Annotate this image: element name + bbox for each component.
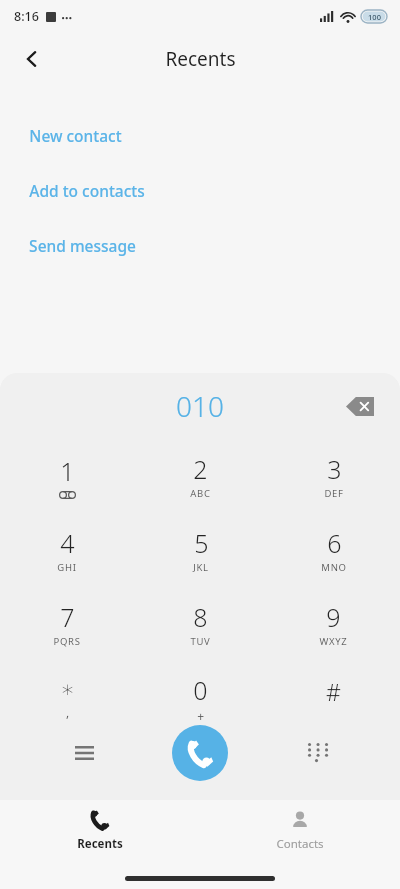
- staticText: 6: [327, 526, 342, 560]
- staticText: 5: [194, 526, 209, 560]
- staticText: PQRS: [53, 635, 81, 648]
- staticText: ∗: [60, 676, 75, 703]
- button[interactable]: Dialpad: [294, 731, 338, 775]
- staticText: 8:16: [14, 8, 39, 25]
- staticText: +: [197, 708, 205, 724]
- button[interactable]: Backspace: [338, 384, 382, 428]
- staticText: TUV: [190, 635, 211, 648]
- staticText: MNO: [321, 561, 347, 574]
- staticText: JKL: [193, 561, 209, 574]
- button[interactable]: 5: [134, 513, 267, 587]
- staticText: DEF: [324, 487, 344, 500]
- button[interactable]: More options: [62, 731, 106, 775]
- button[interactable]: Add to contacts: [0, 163, 400, 218]
- button[interactable]: 9: [267, 587, 400, 661]
- staticText: 010: [176, 387, 224, 425]
- staticText: 1: [60, 454, 75, 488]
- staticText: New contact: [29, 125, 122, 146]
- staticText: 0: [193, 673, 208, 707]
- staticText: ABC: [190, 487, 211, 500]
- staticText: 7: [60, 600, 75, 634]
- button[interactable]: Send message: [0, 218, 400, 273]
- button[interactable]: 8: [134, 587, 267, 661]
- staticText: #: [326, 676, 341, 707]
- staticText: Add to contacts: [29, 180, 145, 201]
- staticText: GHI: [57, 561, 77, 574]
- button[interactable]: 7: [0, 587, 134, 661]
- staticText: 100: [368, 12, 381, 22]
- staticText: 8: [193, 600, 208, 634]
- staticText: Contacts: [276, 836, 324, 852]
- staticText: Send message: [29, 235, 136, 256]
- button[interactable]: ∗: [0, 661, 134, 735]
- button[interactable]: Call: [172, 725, 228, 781]
- button[interactable]: 0: [134, 661, 267, 735]
- button[interactable]: 4: [0, 513, 134, 587]
- staticText: 4: [60, 526, 75, 560]
- staticText: Recents: [165, 46, 236, 72]
- button[interactable]: #: [267, 661, 400, 735]
- button[interactable]: 1: [0, 439, 134, 513]
- staticText: 3: [327, 452, 342, 486]
- button[interactable]: 6: [267, 513, 400, 587]
- staticText: Recents: [77, 836, 123, 852]
- staticText: WXYZ: [319, 635, 348, 648]
- button[interactable]: New contact: [0, 108, 400, 163]
- button[interactable]: Recents: [0, 800, 200, 862]
- staticText: 2: [193, 452, 208, 486]
- button[interactable]: Back: [10, 37, 54, 81]
- button[interactable]: 3: [267, 439, 400, 513]
- button[interactable]: 2: [134, 439, 267, 513]
- staticText: ,: [66, 704, 70, 720]
- button[interactable]: Contacts: [200, 800, 400, 862]
- staticText: 9: [326, 600, 341, 634]
